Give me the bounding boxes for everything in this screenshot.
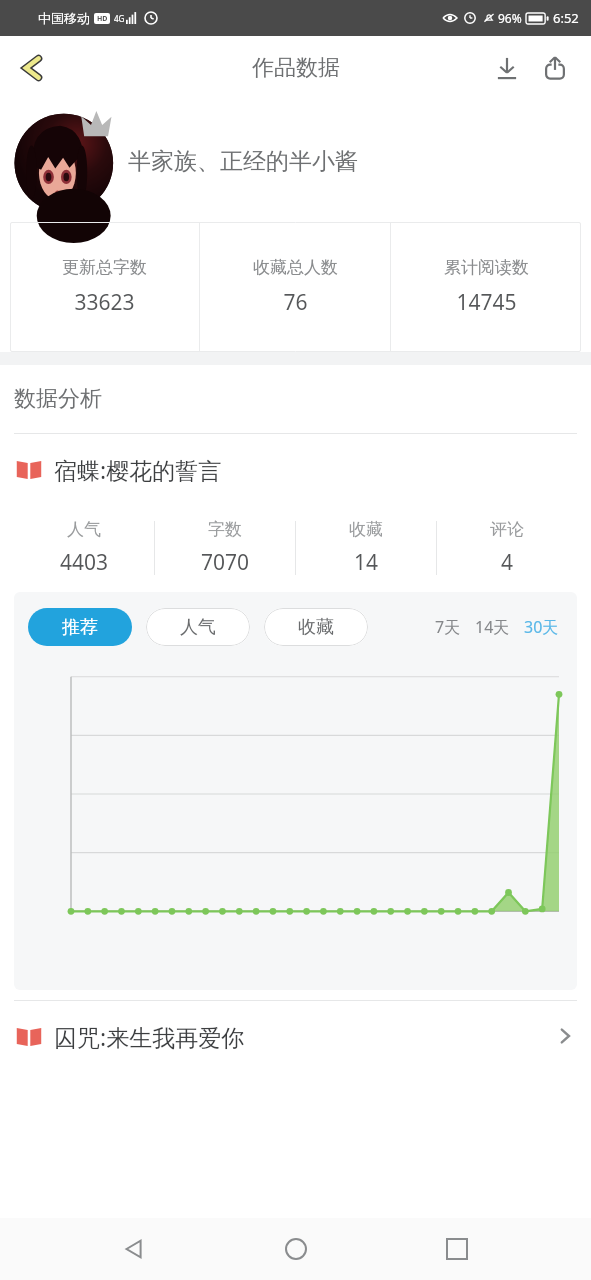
staticText: HD	[97, 14, 108, 24]
staticText: 囚咒:来生我再爱你	[54, 1021, 245, 1052]
staticText: 字数	[208, 519, 242, 540]
button[interactable]: 14天	[473, 610, 512, 644]
staticText: 7天	[435, 616, 461, 638]
button[interactable]: 评论	[437, 519, 577, 577]
staticText: 累计阅读数	[444, 257, 529, 278]
button[interactable]: 收藏	[264, 608, 368, 646]
button[interactable]: 囚咒:来生我再爱你	[0, 1001, 591, 1071]
button[interactable]: 收藏	[296, 519, 436, 577]
button[interactable]: 人气	[146, 608, 250, 646]
staticText: 数据分析	[14, 385, 102, 413]
button[interactable]: 更新总字数	[10, 222, 199, 352]
staticText: 中国移动	[38, 10, 90, 26]
button[interactable]: 推荐	[28, 608, 132, 646]
staticText: 14天	[475, 616, 510, 638]
staticText: 推荐	[62, 616, 98, 639]
button[interactable]: 宿蝶:樱花的誓言	[0, 434, 591, 504]
button[interactable]: Recents	[429, 1221, 485, 1277]
staticText: 人气	[67, 519, 101, 540]
staticText: 14	[354, 548, 379, 577]
staticText: 7070	[201, 548, 250, 577]
button[interactable]: 人气	[14, 519, 154, 577]
button[interactable]: Back	[6, 42, 58, 94]
staticText: 收藏	[349, 519, 383, 540]
button[interactable]: Back	[106, 1221, 162, 1277]
button[interactable]: 收藏总人数	[200, 222, 390, 352]
button[interactable]: Download	[483, 44, 531, 92]
staticText: 76	[283, 288, 308, 317]
staticText: 4403	[60, 548, 109, 577]
staticText: 作品数据	[252, 54, 340, 82]
button[interactable]: 半家族、正经的半小酱	[0, 100, 591, 222]
staticText: 收藏	[298, 616, 334, 639]
staticText: 半家族、正经的半小酱	[128, 147, 358, 176]
button[interactable]: Home	[268, 1221, 324, 1277]
staticText: 评论	[490, 519, 524, 540]
staticText: 96%	[498, 10, 522, 26]
staticText: 30天	[524, 616, 559, 638]
staticText: 4	[501, 548, 514, 577]
staticText: 人气	[180, 616, 216, 639]
staticText: 33623	[74, 288, 135, 317]
button[interactable]: 7天	[433, 610, 463, 644]
button[interactable]: 累计阅读数	[391, 222, 581, 352]
staticText: 4G	[114, 13, 125, 24]
staticText: 宿蝶:樱花的誓言	[54, 454, 222, 485]
button[interactable]: Share	[531, 44, 579, 92]
staticText: 14745	[456, 288, 517, 317]
staticText: 6:52	[553, 9, 579, 27]
button[interactable]: 字数	[155, 519, 295, 577]
staticText: 更新总字数	[62, 257, 147, 278]
staticText: 收藏总人数	[253, 257, 338, 278]
button[interactable]: 30天	[522, 610, 561, 644]
